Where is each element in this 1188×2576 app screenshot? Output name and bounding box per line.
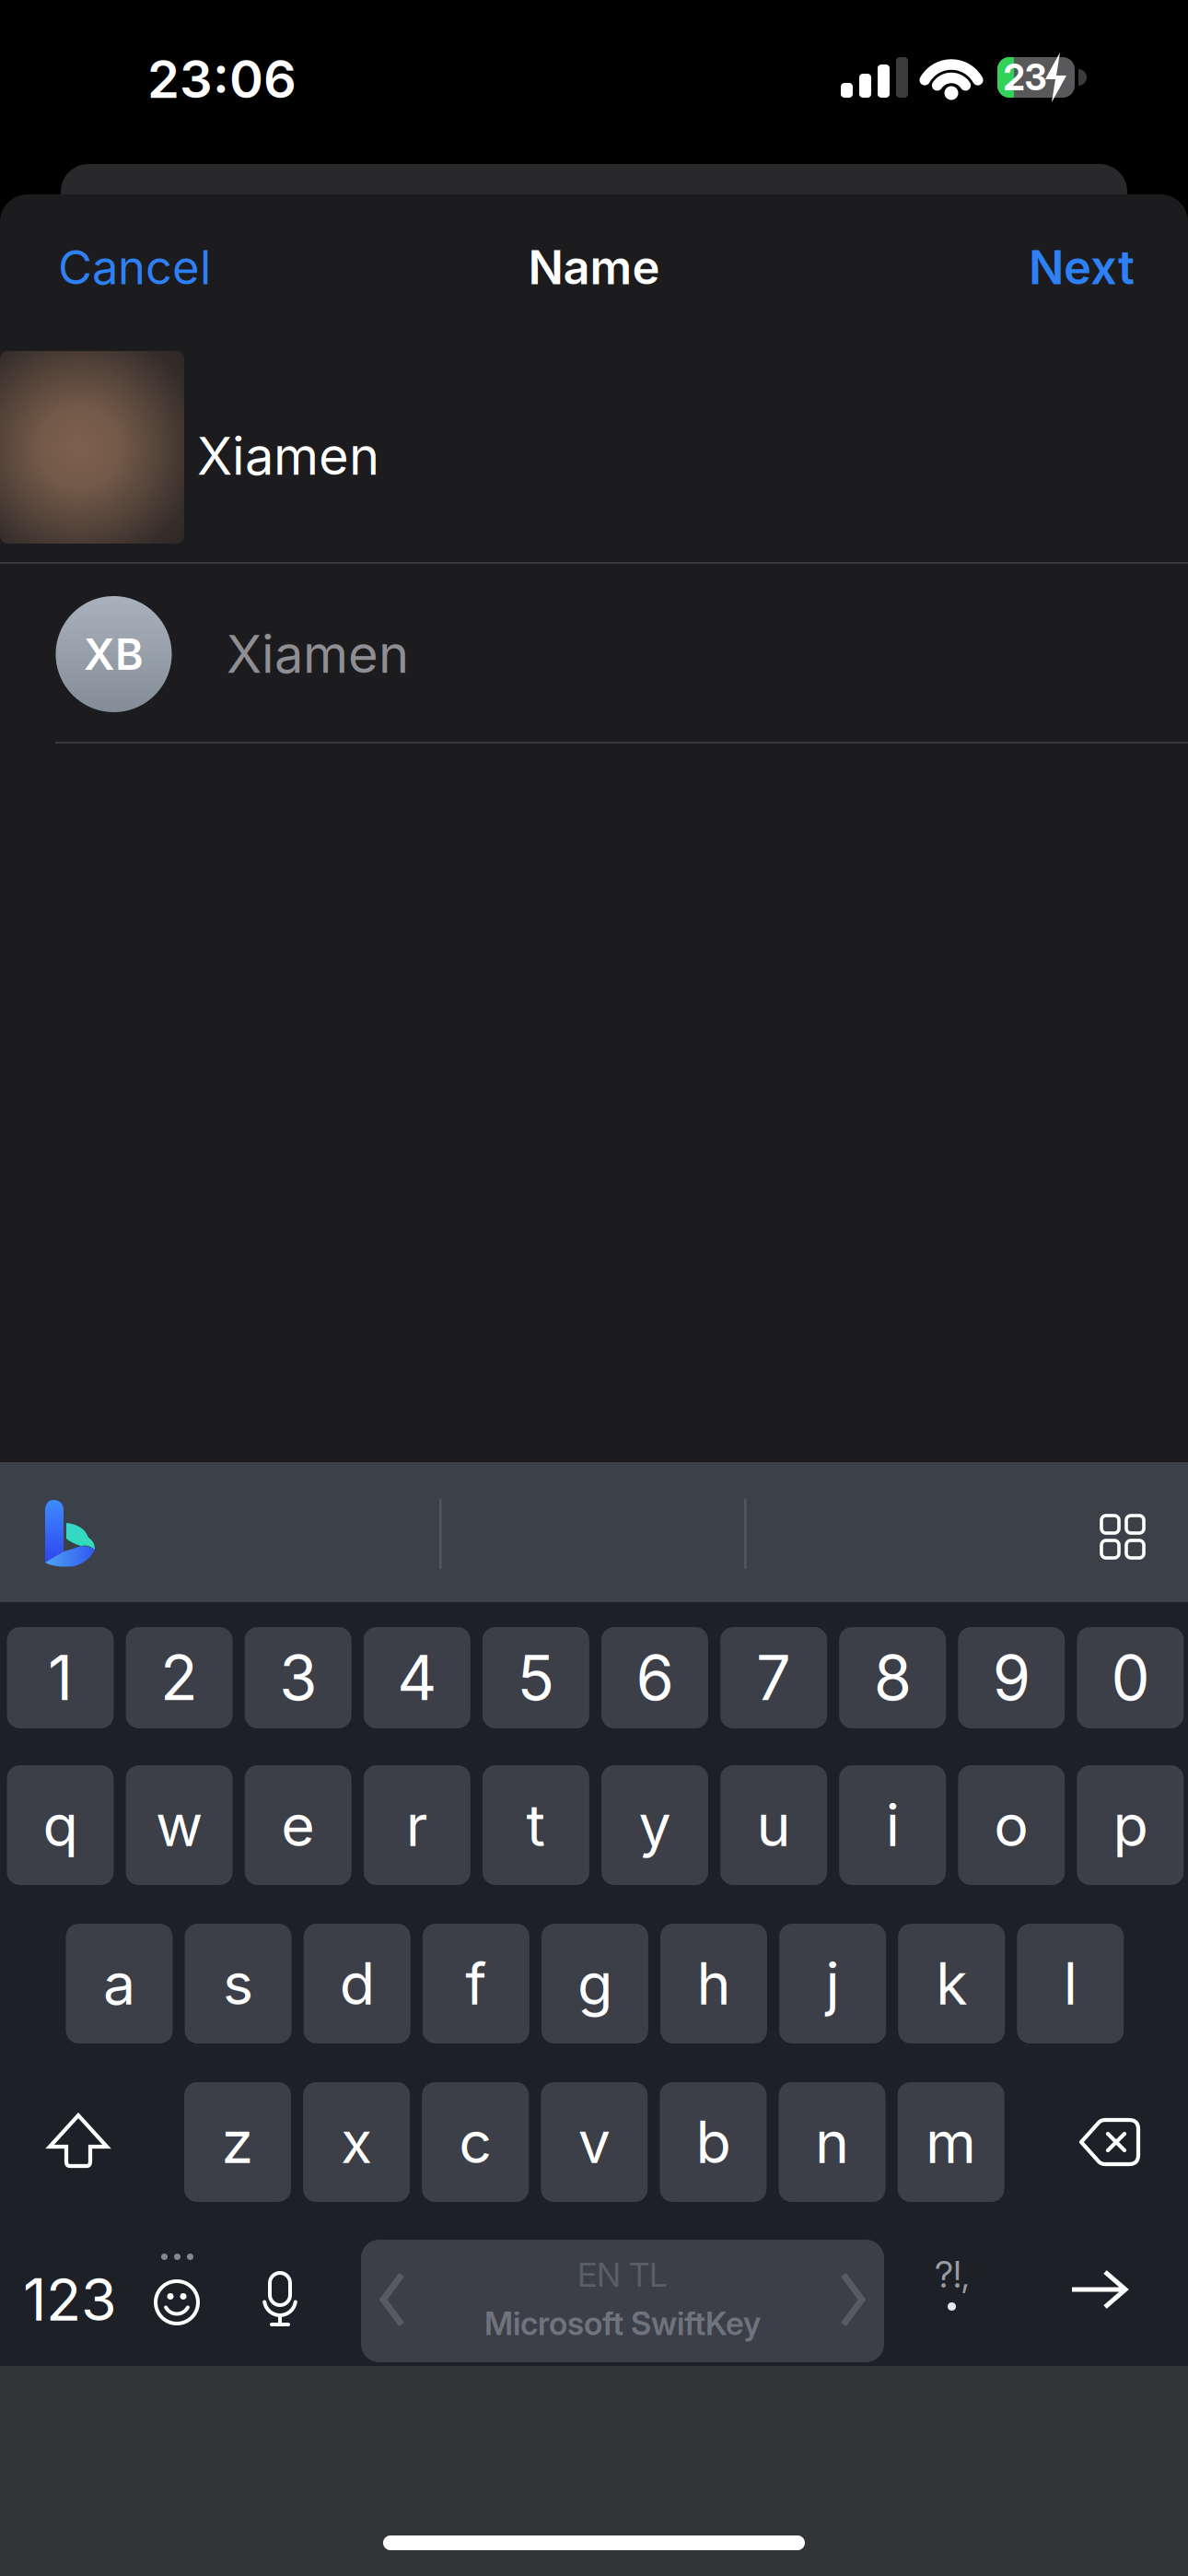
button[interactable]: j	[779, 1924, 886, 2043]
staticText: 123	[23, 2266, 117, 2334]
button[interactable]: g	[541, 1924, 648, 2043]
staticText: 6	[636, 1642, 674, 1714]
staticText: 2	[160, 1642, 198, 1714]
staticText: i	[886, 1791, 899, 1859]
button[interactable]: x	[303, 2082, 410, 2202]
staticText: 23:06	[147, 49, 297, 110]
button[interactable]: u	[720, 1765, 827, 1885]
button[interactable]: s	[185, 1924, 292, 2043]
button[interactable]: w	[126, 1765, 233, 1885]
button[interactable]: Emoji	[154, 2279, 200, 2325]
button[interactable]: 1	[7, 1627, 114, 1728]
button[interactable]: Name text field	[227, 599, 1055, 709]
staticText: EN TL	[577, 2255, 668, 2294]
staticText: j	[826, 1950, 840, 2018]
button[interactable]: b	[660, 2082, 767, 2202]
button[interactable]: Next	[1029, 240, 1135, 295]
button[interactable]: Space	[361, 2240, 884, 2362]
button[interactable]: 4	[364, 1627, 470, 1728]
button[interactable]: 123	[23, 2266, 117, 2334]
button[interactable]: Voice input	[260, 2271, 300, 2328]
button[interactable]: l	[1017, 1924, 1124, 2043]
staticText: 5	[517, 1642, 555, 1714]
staticText: Microsoft SwiftKey	[484, 2305, 761, 2342]
button[interactable]: 9	[958, 1627, 1065, 1728]
staticText: ?!,	[935, 2254, 970, 2296]
button[interactable]: r	[364, 1765, 470, 1885]
button[interactable]: Toolbar apps	[1100, 1514, 1144, 1558]
button[interactable]: n	[779, 2082, 885, 2202]
button[interactable]: c	[422, 2082, 529, 2202]
button[interactable]: d	[304, 1924, 410, 2043]
button[interactable]: 6	[601, 1627, 708, 1728]
staticText: Next	[1029, 240, 1135, 295]
button[interactable]: Punctuation	[915, 2258, 989, 2315]
staticText: p	[1113, 1791, 1148, 1859]
staticText: o	[994, 1791, 1029, 1859]
button[interactable]: a	[66, 1924, 173, 2043]
staticText: t	[526, 1791, 546, 1859]
staticText: Name	[528, 240, 660, 295]
staticText: n	[815, 2108, 849, 2176]
staticText: g	[577, 1950, 612, 2018]
button[interactable]: Bing	[41, 1498, 99, 1568]
staticText: Xiamen	[227, 624, 409, 685]
staticText: 7	[756, 1642, 791, 1714]
staticText: k	[936, 1950, 967, 2018]
staticText: d	[340, 1950, 375, 2018]
staticText: s	[223, 1950, 253, 2018]
button[interactable]: 0	[1077, 1627, 1184, 1728]
staticText: e	[281, 1791, 315, 1859]
button[interactable]: Cancel	[58, 240, 211, 295]
button[interactable]: v	[541, 2082, 648, 2202]
button[interactable]: o	[958, 1765, 1065, 1885]
button[interactable]: 8	[839, 1627, 946, 1728]
staticText: u	[757, 1791, 791, 1859]
button[interactable]: i	[839, 1765, 946, 1885]
staticText: 4	[397, 1642, 437, 1714]
staticText: l	[1063, 1950, 1077, 2018]
staticText: 3	[279, 1642, 317, 1714]
staticText: m	[926, 2108, 976, 2176]
button[interactable]: 7	[720, 1627, 827, 1728]
staticText: w	[156, 1791, 203, 1859]
staticText: 8	[874, 1642, 911, 1714]
button[interactable]: e	[245, 1765, 352, 1885]
button[interactable]: k	[898, 1924, 1005, 2043]
staticText: r	[406, 1791, 428, 1859]
button[interactable]: z	[184, 2082, 291, 2202]
button[interactable]: Return	[1070, 2270, 1127, 2309]
staticText: 9	[993, 1642, 1030, 1714]
button[interactable]: f	[423, 1924, 529, 2043]
staticText: y	[639, 1791, 671, 1859]
staticText: 0	[1111, 1642, 1150, 1714]
staticText: b	[696, 2108, 731, 2176]
staticText: q	[43, 1791, 78, 1859]
button[interactable]: y	[601, 1765, 708, 1885]
button[interactable]: q	[7, 1765, 114, 1885]
staticText: 23	[1003, 56, 1047, 98]
staticText: Xiamen	[197, 426, 379, 487]
button[interactable]: Delete	[1079, 2119, 1140, 2165]
button[interactable]: Shift	[46, 2113, 111, 2171]
button[interactable]: 2	[126, 1627, 233, 1728]
button[interactable]: h	[660, 1924, 767, 2043]
button[interactable]: t	[482, 1765, 589, 1885]
staticText: v	[578, 2108, 610, 2176]
button[interactable]: m	[898, 2082, 1004, 2202]
staticText: z	[221, 2108, 254, 2176]
staticText: XB	[84, 629, 144, 680]
staticText: a	[103, 1950, 135, 2018]
staticText: x	[341, 2108, 372, 2176]
button[interactable]: 3	[245, 1627, 352, 1728]
button[interactable]: 5	[482, 1627, 589, 1728]
staticText: 1	[48, 1642, 73, 1714]
staticText: h	[697, 1950, 731, 2018]
staticText: f	[465, 1950, 487, 2018]
staticText: Cancel	[58, 240, 211, 295]
staticText: c	[459, 2108, 492, 2176]
button[interactable]: p	[1077, 1765, 1184, 1885]
